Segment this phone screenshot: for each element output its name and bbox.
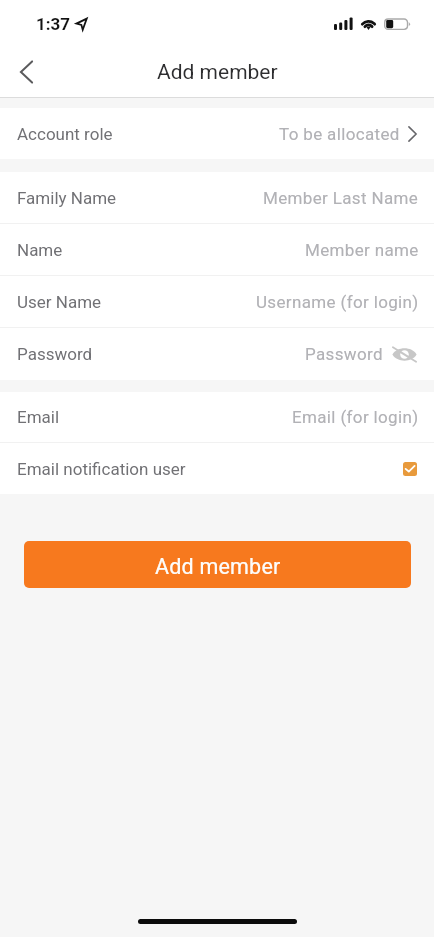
button[interactable]: Password — [0, 328, 434, 380]
staticText: Account role — [17, 124, 113, 144]
staticText: 1:37 — [36, 14, 71, 34]
button[interactable]: Account role — [0, 108, 434, 159]
staticText: Email (for login) — [292, 407, 419, 427]
staticText: Email — [17, 407, 60, 427]
button[interactable]: Name — [0, 224, 434, 276]
button[interactable]: Add member — [24, 541, 411, 588]
staticText: Email notification user — [17, 459, 186, 479]
staticText: Username (for login) — [256, 292, 419, 312]
staticText: User Name — [17, 292, 102, 312]
staticText: Add member — [155, 554, 281, 579]
button[interactable]: Family Name — [0, 172, 434, 224]
button[interactable]: User Name — [0, 276, 434, 328]
button[interactable]: Email notification toggle — [403, 462, 417, 476]
staticText: Family Name — [17, 188, 117, 208]
button[interactable]: Back — [7, 53, 45, 91]
staticText: Member name — [305, 240, 419, 260]
staticText: Password — [17, 344, 93, 364]
staticText: To be allocated — [279, 124, 400, 144]
button[interactable]: Email notification user — [0, 443, 434, 494]
button[interactable]: Show password — [392, 347, 417, 362]
staticText: Add member — [157, 60, 278, 85]
staticText: Password — [305, 344, 383, 364]
button[interactable]: Email — [0, 392, 434, 443]
staticText: Name — [17, 240, 63, 260]
staticText: Member Last Name — [263, 188, 419, 208]
